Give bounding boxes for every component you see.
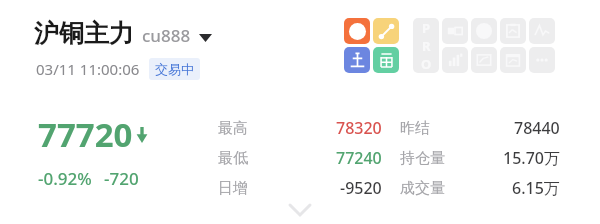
button[interactable]: Trend bbox=[373, 18, 399, 44]
button[interactable]: 沪铜主力 bbox=[34, 18, 212, 49]
staticText: 78320 bbox=[336, 117, 382, 139]
button[interactable]: 最高 bbox=[218, 113, 382, 143]
button[interactable]: Secondary bbox=[373, 47, 399, 73]
staticText: 交易中 bbox=[155, 61, 194, 77]
staticText: -0.92% bbox=[38, 167, 92, 190]
staticText: -9520 bbox=[340, 177, 382, 199]
staticText: 03/11 11:00:06 bbox=[36, 59, 140, 79]
staticText: P bbox=[422, 19, 431, 37]
button[interactable]: 持仓量 bbox=[400, 143, 560, 173]
button[interactable]: Wave bbox=[529, 18, 555, 44]
button[interactable]: Price bbox=[471, 18, 497, 44]
staticText: 77720 bbox=[38, 112, 133, 157]
staticText: 昨结 bbox=[400, 119, 430, 138]
staticText: 最低 bbox=[218, 149, 248, 168]
button[interactable]: 日增 bbox=[218, 173, 382, 203]
button[interactable]: 交易中 bbox=[149, 58, 200, 80]
button[interactable]: Expand bbox=[283, 202, 317, 218]
staticText: 沪铜主力 bbox=[34, 18, 134, 49]
staticText: O bbox=[421, 55, 432, 73]
other: Select contract bbox=[199, 34, 212, 42]
staticText: 最高 bbox=[218, 119, 248, 138]
button[interactable]: 成交量 bbox=[400, 173, 560, 203]
staticText: 日增 bbox=[218, 179, 248, 198]
button[interactable]: News bbox=[442, 18, 468, 44]
staticText: 持仓量 bbox=[400, 149, 445, 168]
staticText: 77240 bbox=[336, 147, 382, 169]
staticText: 15.70万 bbox=[503, 147, 560, 169]
button[interactable]: Funds bbox=[344, 18, 370, 44]
staticText: cu888 bbox=[142, 24, 191, 47]
button[interactable]: Stats bbox=[442, 47, 468, 73]
button[interactable]: Report bbox=[500, 18, 526, 44]
button[interactable]: 最低 bbox=[218, 143, 382, 173]
staticText: -720 bbox=[104, 167, 139, 190]
button[interactable]: 昨结 bbox=[400, 113, 560, 143]
button[interactable]: Chart bbox=[471, 47, 497, 73]
staticText: 成交量 bbox=[400, 179, 445, 198]
button[interactable]: Calendar bbox=[500, 47, 526, 73]
button[interactable]: PRO bbox=[413, 18, 439, 73]
button[interactable]: More bbox=[529, 47, 555, 73]
staticText: 6.15万 bbox=[512, 177, 560, 199]
button[interactable]: Main force bbox=[344, 47, 370, 73]
staticText: R bbox=[422, 37, 431, 55]
staticText: 78440 bbox=[514, 117, 560, 139]
